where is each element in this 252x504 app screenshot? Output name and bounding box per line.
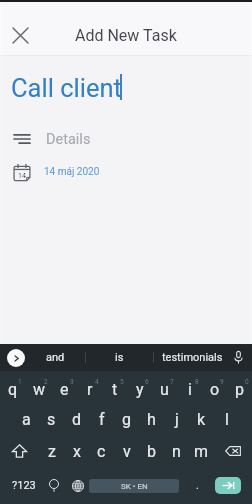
staticText: 8 [195, 378, 199, 386]
staticText: 4 [95, 378, 99, 386]
button[interactable]: Shift [0, 435, 39, 467]
staticText: is [115, 351, 124, 364]
button[interactable]: is [86, 344, 153, 371]
button[interactable]: d [64, 404, 89, 435]
button[interactable]: r [77, 374, 102, 404]
staticText: y [136, 380, 144, 399]
staticText: 6 [145, 378, 149, 386]
button[interactable]: k [189, 404, 214, 435]
staticText: t [112, 380, 118, 399]
staticText: w [33, 380, 46, 399]
button[interactable]: Enter [215, 477, 241, 494]
button[interactable]: s [39, 404, 64, 435]
staticText: o [210, 380, 220, 399]
staticText: q [8, 380, 18, 399]
button[interactable]: Expand suggestions [7, 349, 25, 367]
staticText: 0 [245, 378, 249, 386]
staticText: z [48, 442, 56, 461]
button[interactable]: c [89, 435, 114, 467]
staticText: 14 máj 2020 [44, 166, 100, 178]
button[interactable]: m [189, 435, 214, 467]
staticText: h [147, 410, 156, 429]
staticText: Call client [11, 73, 122, 103]
staticText: g [122, 410, 131, 429]
button[interactable]: Backspace [214, 435, 252, 467]
button[interactable]: Change language [67, 467, 89, 504]
button[interactable]: e [52, 374, 77, 404]
button[interactable]: testimonials [154, 344, 231, 371]
button[interactable]: . [179, 467, 215, 504]
staticText: c [97, 442, 106, 461]
button[interactable]: i [177, 374, 202, 404]
staticText: r [87, 380, 93, 399]
staticText: j [175, 410, 179, 429]
button[interactable]: p [227, 374, 252, 404]
staticText: Details [46, 131, 91, 148]
staticText: p [235, 380, 244, 399]
staticText: k [197, 410, 206, 429]
button[interactable]: a [14, 404, 39, 435]
button[interactable]: 14 [0, 156, 252, 188]
button[interactable]: o [202, 374, 227, 404]
button[interactable]: l [214, 404, 239, 435]
button[interactable]: Close [5, 20, 35, 50]
staticText: x [73, 442, 81, 461]
button[interactable]: ?123 [7, 467, 41, 504]
button[interactable]: Emoji [41, 467, 67, 504]
staticText: u [160, 380, 169, 399]
button[interactable]: SK • EN [89, 479, 179, 493]
staticText: l [225, 410, 229, 429]
staticText: 7 [170, 378, 174, 386]
staticText: f [99, 410, 105, 429]
staticText: . [196, 479, 199, 492]
button[interactable]: j [164, 404, 189, 435]
button[interactable]: h [139, 404, 164, 435]
button[interactable]: q [0, 374, 26, 404]
staticText: ?123 [12, 479, 36, 492]
staticText: 9 [220, 378, 224, 386]
staticText: e [60, 380, 69, 399]
button[interactable]: v [114, 435, 139, 467]
staticText: d [72, 410, 82, 429]
staticText: 2 [44, 378, 48, 386]
staticText: SK • EN [121, 482, 148, 491]
button[interactable]: f [89, 404, 114, 435]
button[interactable]: g [114, 404, 139, 435]
button[interactable]: z [39, 435, 64, 467]
staticText: s [47, 410, 56, 429]
staticText: a [22, 410, 31, 429]
staticText: 14 [18, 172, 26, 180]
staticText: n [172, 442, 181, 461]
staticText: testimonials [162, 351, 223, 364]
button[interactable]: n [164, 435, 189, 467]
staticText: b [147, 442, 156, 461]
staticText: and [46, 351, 65, 364]
button[interactable]: y [127, 374, 152, 404]
staticText: v [123, 442, 131, 461]
button[interactable]: Voice input [231, 344, 245, 371]
button[interactable]: x [64, 435, 89, 467]
button[interactable]: b [139, 435, 164, 467]
button[interactable]: u [152, 374, 177, 404]
staticText: m [194, 442, 209, 461]
button[interactable]: w [26, 374, 52, 404]
staticText: Add New Task [75, 26, 177, 45]
staticText: 3 [70, 378, 74, 386]
button[interactable]: and [25, 344, 85, 371]
staticText: 5 [120, 378, 124, 386]
staticText: i [188, 380, 192, 399]
button[interactable]: t [102, 374, 127, 404]
staticText: 1 [18, 378, 22, 386]
button[interactable]: Details [0, 122, 252, 156]
